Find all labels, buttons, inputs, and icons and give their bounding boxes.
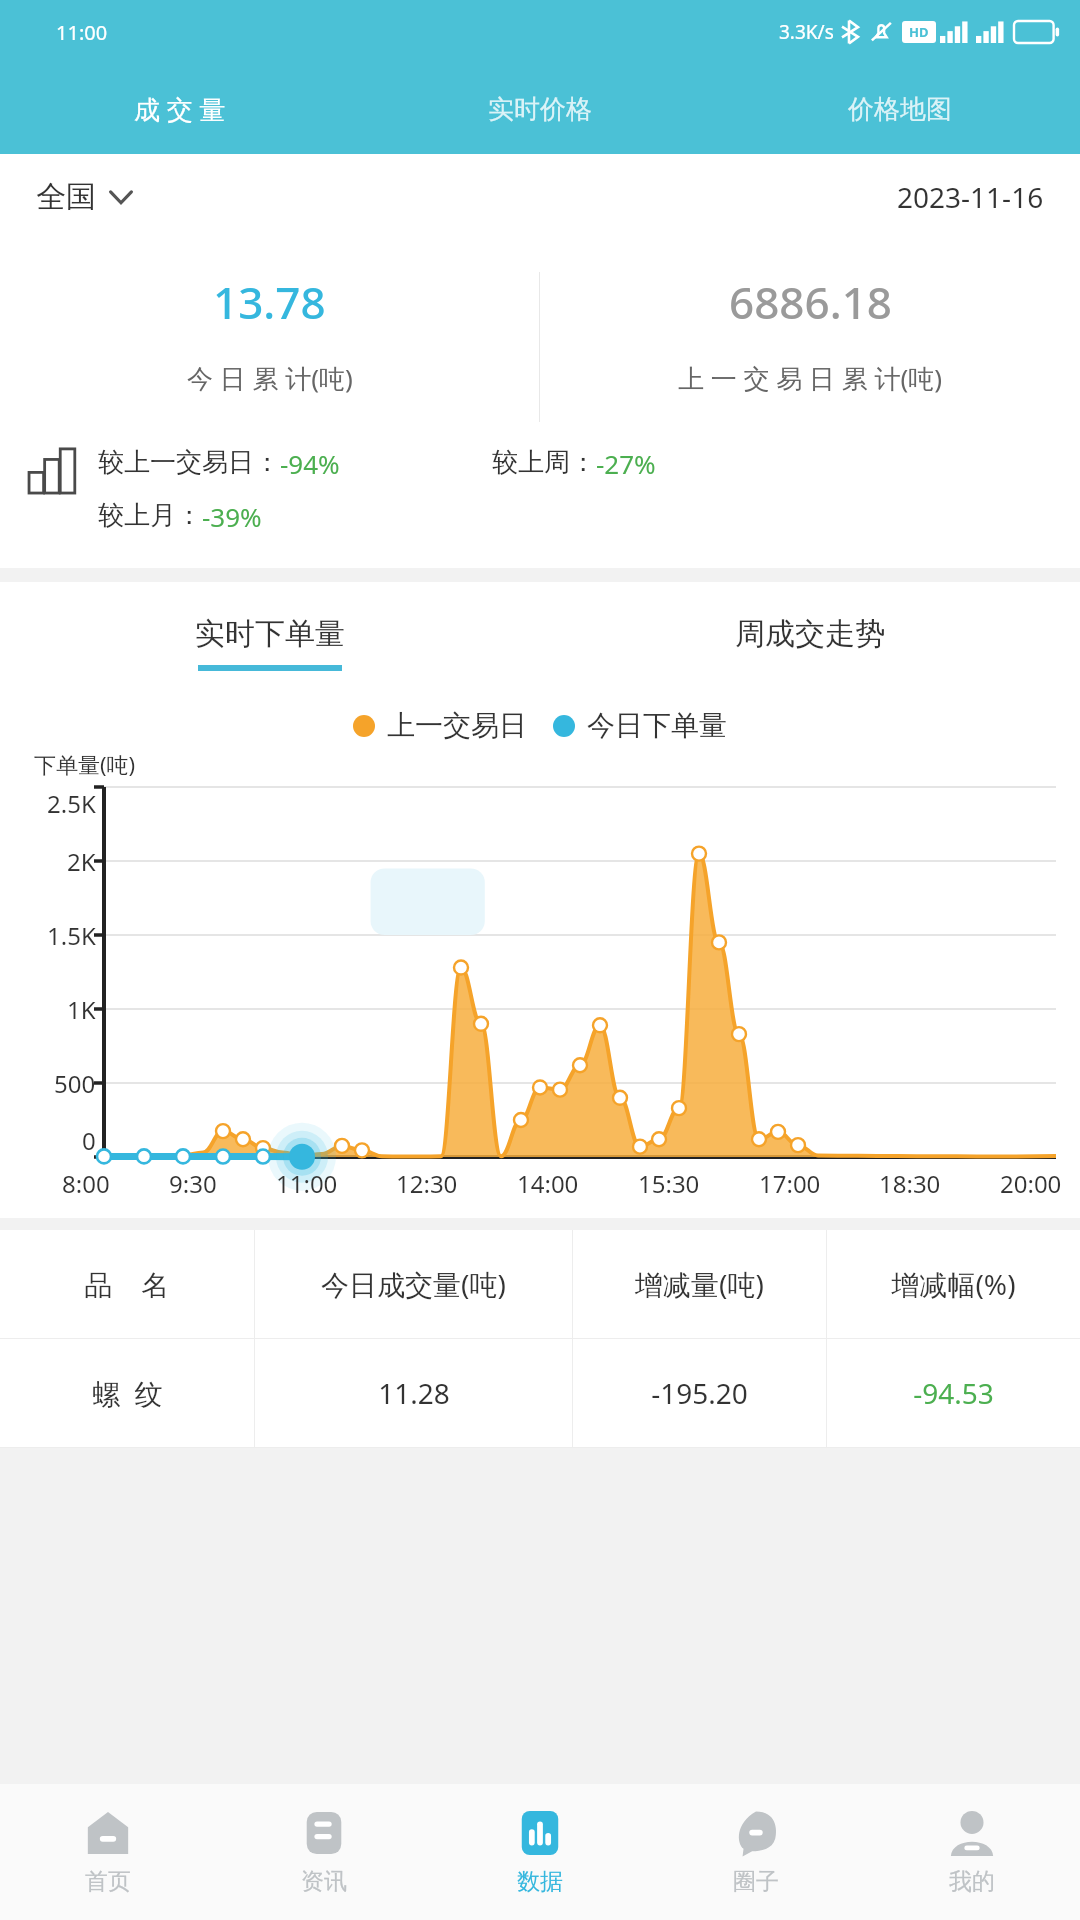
staticText: 6886.18 (729, 272, 892, 332)
staticText: 12:30 (396, 1167, 458, 1200)
staticText: 增减量(吨) (635, 1265, 764, 1303)
button[interactable]: 数据 (432, 1784, 648, 1920)
staticText: HD (909, 23, 929, 41)
staticText: 今日成交量(吨) (321, 1265, 506, 1303)
staticText: -27% (596, 446, 656, 481)
staticText: 实时下单量 (195, 615, 345, 653)
staticText: 今 日 累 计(吨) (187, 360, 353, 396)
button[interactable]: 成 交 量 (0, 64, 360, 154)
button[interactable]: 我的 (864, 1784, 1080, 1920)
staticText: 11:00 (276, 1167, 338, 1200)
staticText: 18:30 (879, 1167, 941, 1200)
button[interactable]: 圈子 (648, 1784, 864, 1920)
button[interactable]: 实时下单量 (0, 604, 540, 682)
staticText: 今日下单量 (587, 708, 727, 743)
staticText: 增减幅(%) (891, 1265, 1016, 1303)
staticText: 首页 (85, 1867, 131, 1896)
staticText: 2.5K (47, 787, 96, 820)
staticText: 上一交易日 (387, 708, 527, 743)
staticText: -39% (202, 499, 262, 534)
staticText: 品 名 (84, 1265, 170, 1303)
button[interactable]: 全国 (36, 178, 134, 216)
staticText: -94% (280, 446, 340, 481)
staticText: 下单量(吨) (34, 749, 136, 779)
staticText: 20:00 (1000, 1167, 1062, 1200)
staticText: 上 一 交 易 日 累 计(吨) (678, 360, 943, 396)
staticText: 较上月： (98, 499, 202, 532)
button[interactable]: 螺 纹 (0, 1339, 1080, 1447)
button[interactable]: 资讯 (216, 1784, 432, 1920)
staticText: 我的 (949, 1867, 995, 1896)
staticText: 3.3K/s (779, 19, 834, 45)
staticText: -94.53 (913, 1374, 994, 1412)
staticText: 17:00 (759, 1167, 821, 1200)
staticText: 圈子 (733, 1867, 779, 1896)
staticText: 11:00 (56, 19, 108, 46)
staticText: 2K (67, 845, 96, 878)
staticText: 13.78 (213, 272, 326, 332)
staticText: 14:00 (517, 1167, 579, 1200)
button[interactable]: 周成交走势 (540, 604, 1080, 682)
staticText: 0 (82, 1124, 96, 1157)
staticText: 8:00 (62, 1167, 110, 1200)
staticText: 11.28 (378, 1374, 450, 1412)
staticText: 9:30 (169, 1167, 217, 1200)
staticText: 成 交 量 (134, 91, 226, 127)
button[interactable]: 首页 (0, 1784, 216, 1920)
staticText: 价格地图 (848, 93, 952, 126)
staticText: 15:30 (638, 1167, 700, 1200)
staticText: 数据 (517, 1867, 563, 1896)
staticText: 500 (54, 1067, 96, 1100)
staticText: -195.20 (651, 1374, 748, 1412)
staticText: 全国 (36, 178, 96, 216)
staticText: 周成交走势 (735, 615, 885, 653)
button[interactable]: 价格地图 (720, 64, 1080, 154)
staticText: 1.5K (47, 919, 96, 952)
button[interactable]: 实时价格 (360, 64, 720, 154)
staticText: 较上周： (492, 446, 596, 479)
staticText: 较上一交易日： (98, 446, 280, 479)
staticText: 2023-11-16 (897, 178, 1044, 216)
staticText: 1K (67, 993, 96, 1026)
staticText: 资讯 (301, 1867, 347, 1896)
staticText: 实时价格 (488, 93, 592, 126)
staticText: 螺 纹 (92, 1374, 163, 1412)
